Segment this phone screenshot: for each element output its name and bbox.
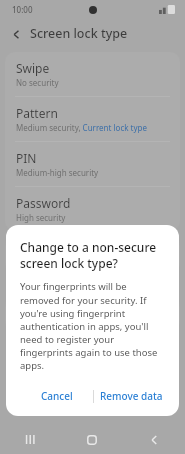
button[interactable]: Cancel — [20, 382, 93, 410]
staticText: Your fingerprints will be removed for yo… — [20, 280, 168, 371]
button[interactable]: None — [5, 236, 180, 273]
staticText: Cancel — [41, 389, 73, 403]
staticText: Change to a non-secure screen lock type? — [20, 239, 168, 271]
button[interactable]: PIN — [5, 142, 180, 186]
button[interactable]: Recent apps — [0, 425, 61, 454]
staticText: Pattern — [16, 105, 58, 121]
staticText: 10:00 — [12, 4, 33, 15]
button[interactable]: Password — [5, 187, 180, 231]
button[interactable]: Navigate up — [5, 23, 27, 45]
button[interactable]: Face — [5, 297, 180, 331]
staticText: Medium security, Current lock type — [16, 122, 147, 133]
staticText: No security — [16, 77, 59, 88]
staticText: Screen lock type — [30, 25, 128, 42]
staticText: Password — [16, 195, 71, 211]
staticText: Swipe — [16, 60, 50, 76]
staticText: Medium-high security — [16, 167, 99, 178]
button[interactable]: Home — [61, 425, 123, 454]
staticText: None — [16, 246, 47, 262]
button[interactable]: Pattern — [5, 97, 180, 141]
staticText: Face — [16, 306, 42, 322]
button[interactable]: Remove data — [94, 382, 168, 410]
staticText: PIN — [16, 150, 37, 166]
button[interactable]: Swipe — [5, 52, 180, 96]
button[interactable]: Back — [123, 425, 185, 454]
staticText: High security — [16, 212, 66, 223]
staticText: Remove data — [100, 389, 163, 403]
staticText: Biometrics — [12, 280, 53, 291]
